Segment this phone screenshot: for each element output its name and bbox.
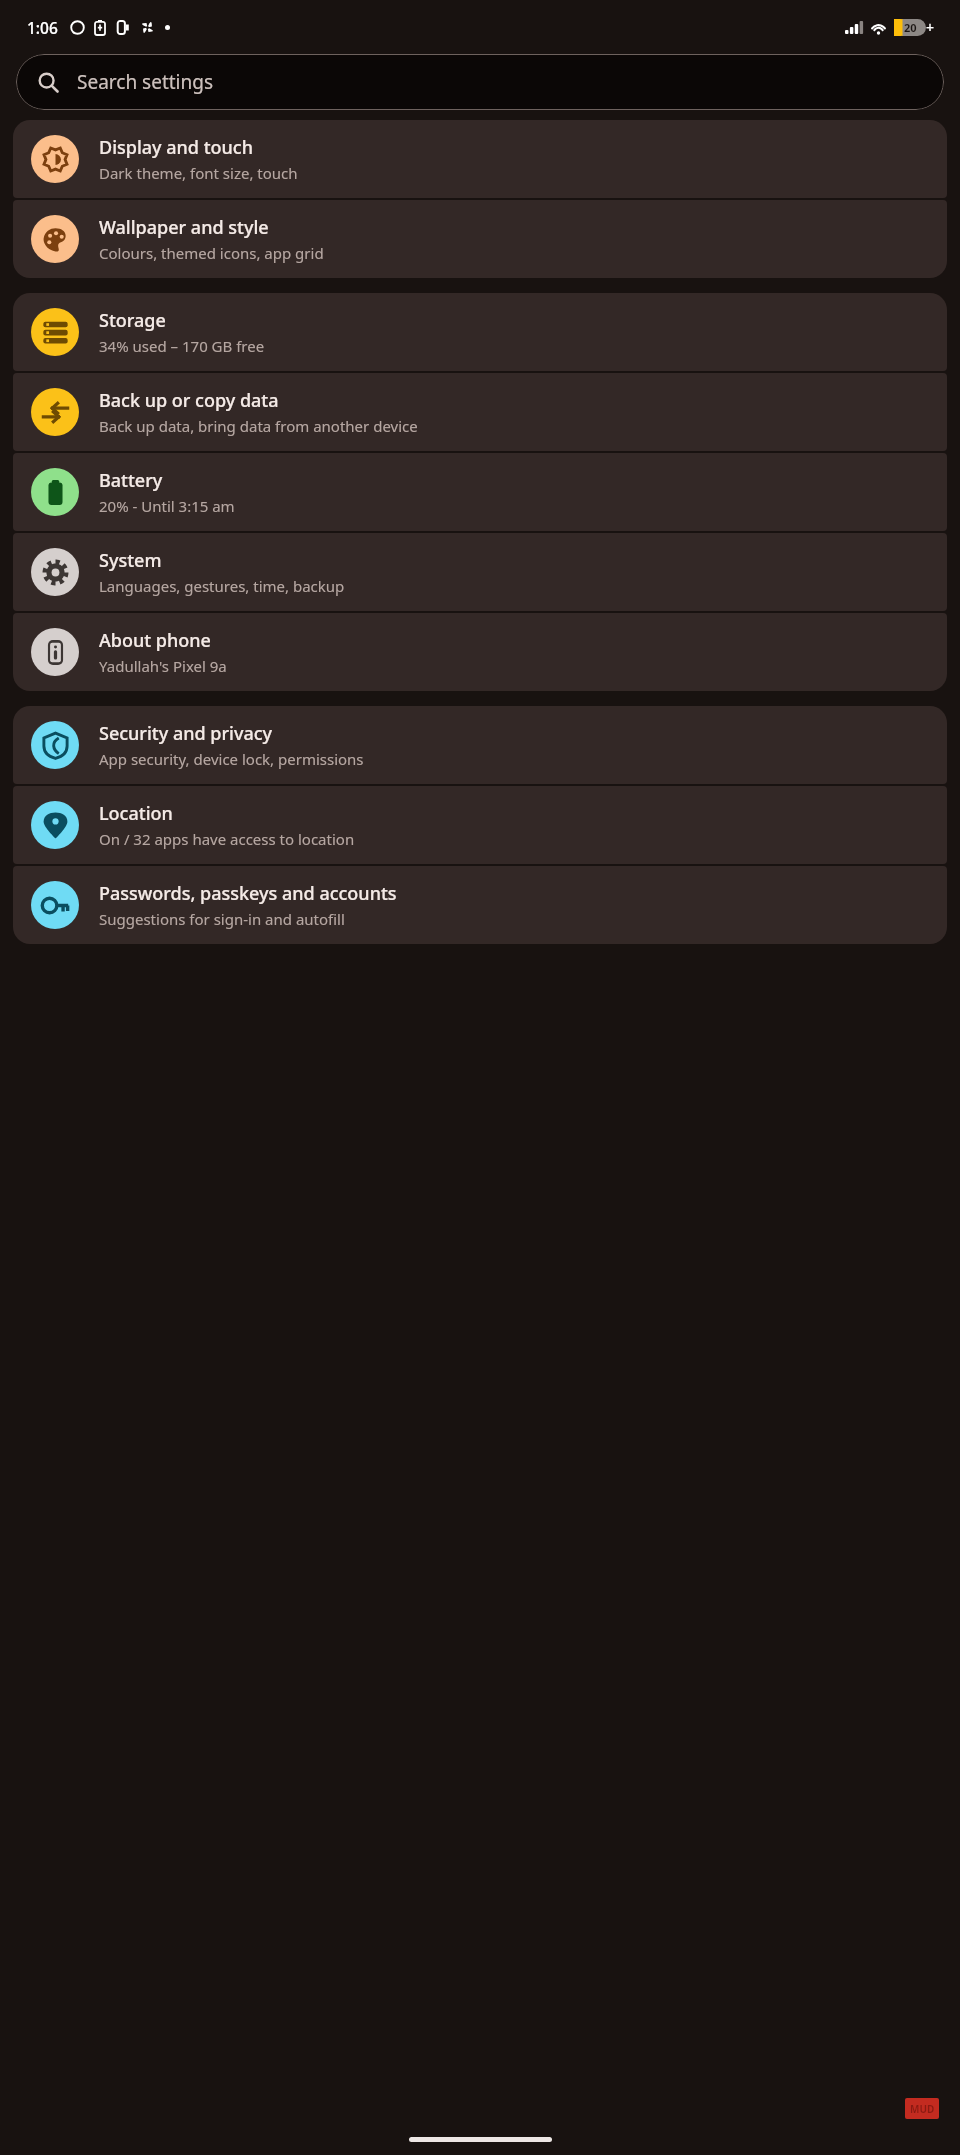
staticText: Yadullah's Pixel 9a bbox=[99, 656, 227, 676]
staticText: System bbox=[99, 548, 162, 573]
button[interactable]: Storage bbox=[13, 293, 947, 371]
staticText: 20 bbox=[904, 20, 917, 35]
staticText: Dark theme, font size, touch bbox=[99, 163, 298, 183]
staticText: Suggestions for sign-in and autofill bbox=[99, 909, 345, 929]
button[interactable]: About phone bbox=[13, 613, 947, 691]
button[interactable]: Wallpaper and style bbox=[13, 200, 947, 278]
staticText: Search settings bbox=[77, 69, 214, 95]
staticText: Passwords, passkeys and accounts bbox=[99, 881, 397, 906]
staticText: 34% used – 170 GB free bbox=[99, 336, 265, 356]
staticText: 20% - Until 3:15 am bbox=[99, 496, 235, 516]
staticText: Storage bbox=[99, 308, 166, 333]
staticText: 1:06 bbox=[27, 17, 58, 38]
staticText: About phone bbox=[99, 628, 211, 653]
staticText: Back up data, bring data from another de… bbox=[99, 416, 418, 436]
staticText: MUD bbox=[910, 2102, 935, 2116]
staticText: Back up or copy data bbox=[99, 388, 279, 413]
button[interactable]: Security and privacy bbox=[13, 706, 947, 784]
staticText: App security, device lock, permissions bbox=[99, 749, 364, 769]
staticText: On / 32 apps have access to location bbox=[99, 829, 355, 849]
other: Search bbox=[38, 72, 59, 93]
button[interactable]: System bbox=[13, 533, 947, 611]
staticText: + bbox=[926, 18, 935, 37]
staticText: Battery bbox=[99, 468, 163, 493]
button[interactable]: Battery bbox=[13, 453, 947, 531]
staticText: Colours, themed icons, app grid bbox=[99, 243, 324, 263]
staticText: Display and touch bbox=[99, 135, 253, 160]
button[interactable]: Search bbox=[16, 54, 944, 110]
staticText: Languages, gestures, time, backup bbox=[99, 576, 345, 596]
button[interactable]: Display and touch bbox=[13, 120, 947, 198]
button[interactable]: Passwords, passkeys and accounts bbox=[13, 866, 947, 944]
button[interactable]: Back up or copy data bbox=[13, 373, 947, 451]
button[interactable]: Location bbox=[13, 786, 947, 864]
staticText: Security and privacy bbox=[99, 721, 273, 746]
staticText: Location bbox=[99, 801, 173, 826]
staticText: Wallpaper and style bbox=[99, 215, 269, 240]
